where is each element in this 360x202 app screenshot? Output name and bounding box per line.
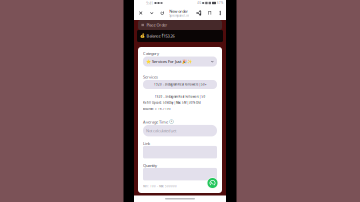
- staticText: Link: [143, 141, 150, 146]
- staticText: Sprempanel.in: [169, 14, 189, 17]
- button[interactable]: Chat on WhatsApp: [207, 177, 218, 189]
- staticText: Refill Upcost: 50k/Day | Max: 5M | 30% O…: [143, 101, 201, 104]
- button[interactable]: Close: [135, 6, 146, 19]
- staticText: 4G: [197, 1, 201, 5]
- staticText: ⭐ Services For Just 🎉✨: [146, 59, 192, 64]
- staticText: 💰: [140, 34, 145, 38]
- button[interactable]: 1920 - Instagram Real Followers | 50: [143, 80, 217, 89]
- button[interactable]: ⭐ Services For Just 🎉✨: [143, 56, 217, 66]
- staticText: New order: [169, 9, 188, 14]
- staticText: ▾: [205, 83, 206, 86]
- staticText: Quantity: [143, 163, 157, 168]
- button[interactable]: Share: [193, 6, 204, 19]
- button[interactable]: Reload page: [157, 6, 167, 19]
- staticText: Min: 100 - Max: 500000: [143, 184, 177, 188]
- button[interactable]: Place Order: [138, 20, 222, 30]
- staticText: Category: [143, 51, 159, 56]
- staticText: Not calculated yet: [146, 128, 176, 133]
- staticText: Place Order: [146, 22, 167, 28]
- staticText: Accurate = 16.7195: [143, 107, 171, 110]
- staticText: 9:41: [146, 0, 153, 6]
- button[interactable]: Downloads: [204, 6, 215, 19]
- button[interactable]: Minimise: [146, 6, 157, 19]
- staticText: 1920 - Instagram Real Followers | 50: [154, 83, 205, 86]
- staticText: Average Time 🕐: [143, 119, 174, 125]
- staticText: 67%: [217, 1, 223, 5]
- staticText: 1920 - Instagram Real Followers | 50: [154, 95, 205, 98]
- staticText: Services: [143, 74, 158, 80]
- button[interactable]: More options: [215, 6, 225, 19]
- staticText: Balance ₹153.26: [147, 33, 175, 39]
